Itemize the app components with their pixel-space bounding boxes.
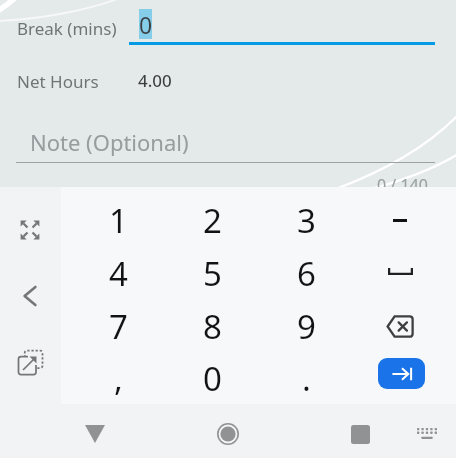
button[interactable]: 8: [165, 300, 259, 353]
button[interactable]: Back: [7, 273, 53, 319]
button[interactable]: 7: [71, 300, 165, 353]
staticText: 0: [203, 356, 222, 401]
staticText: 8: [203, 304, 222, 349]
staticText: 3: [297, 198, 316, 243]
button[interactable]: 1: [71, 194, 165, 247]
button[interactable]: 3: [259, 194, 353, 247]
staticText: 0: [139, 9, 152, 39]
button[interactable]: Recent apps: [334, 408, 386, 458]
other: Backspace: [386, 315, 414, 338]
button[interactable]: Next field: [353, 353, 447, 404]
staticText: 5: [203, 251, 222, 296]
button[interactable]: Expand keyboard: [7, 207, 53, 253]
staticText: .: [302, 356, 311, 401]
button[interactable]: Hide keyboard: [69, 408, 121, 458]
staticText: Net Hours: [17, 70, 99, 93]
button[interactable]: Switch keyboard: [403, 410, 451, 458]
staticText: 4: [109, 251, 128, 296]
staticText: 4.00: [138, 69, 172, 92]
button[interactable]: Floating keyboard: [7, 339, 53, 385]
button[interactable]: Space: [353, 247, 447, 300]
other: Space: [388, 267, 413, 275]
staticText: ,: [114, 356, 123, 401]
staticText: 1: [109, 198, 128, 243]
other: Next field: [378, 358, 425, 389]
button[interactable]: 5: [165, 247, 259, 300]
staticText: 9: [297, 304, 316, 349]
button[interactable]: Home: [202, 408, 254, 458]
button[interactable]: 0: [165, 353, 259, 404]
staticText: 2: [203, 198, 222, 243]
button[interactable]: 2: [165, 194, 259, 247]
button[interactable]: Minus: [353, 194, 447, 247]
staticText: Break (mins): [17, 17, 117, 40]
staticText: 6: [297, 251, 316, 296]
button[interactable]: 4: [71, 247, 165, 300]
button[interactable]: ,: [71, 353, 165, 404]
button[interactable]: 9: [259, 300, 353, 353]
button[interactable]: 6: [259, 247, 353, 300]
staticText: 7: [109, 304, 128, 349]
button[interactable]: Backspace: [353, 300, 447, 353]
staticText: Note (Optional): [30, 127, 189, 157]
button[interactable]: .: [259, 353, 353, 404]
staticText: 0 / 140: [377, 174, 428, 196]
